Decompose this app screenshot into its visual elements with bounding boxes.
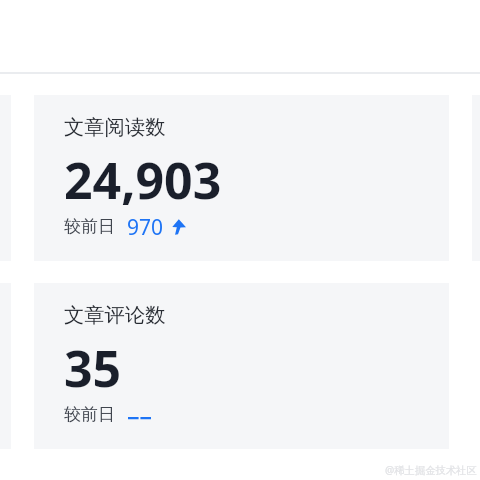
staticText: 文章阅读数 — [64, 114, 166, 140]
staticText: 较前日 — [64, 216, 115, 237]
staticText: @稀土掘金技术社区 — [385, 463, 477, 477]
staticText: 970 — [127, 213, 164, 242]
button[interactable]: 文章评论数 — [34, 283, 449, 449]
staticText: 文章评论数 — [64, 302, 166, 328]
staticText: 较前日 — [64, 404, 115, 425]
staticText: 24,903 — [64, 146, 222, 214]
staticText: 35 — [64, 334, 122, 402]
other: 无变化 — [128, 417, 151, 420]
other: 较前日上升 — [172, 219, 186, 235]
button[interactable]: 文章阅读数 — [34, 95, 449, 261]
